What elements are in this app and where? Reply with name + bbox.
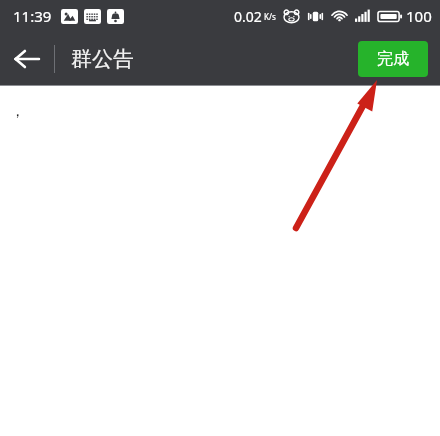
staticText: ， xyxy=(10,102,25,121)
staticText: 100 xyxy=(406,6,432,26)
staticText: 11:39 xyxy=(13,6,52,26)
button[interactable]: ， xyxy=(0,86,440,436)
staticText: K/s xyxy=(264,11,276,22)
staticText: 0.02 xyxy=(234,7,262,26)
staticText: 完成 xyxy=(377,49,409,69)
button[interactable]: 完成 xyxy=(358,41,428,77)
button[interactable]: Back xyxy=(0,32,54,86)
staticText: 群公告 xyxy=(71,46,134,72)
